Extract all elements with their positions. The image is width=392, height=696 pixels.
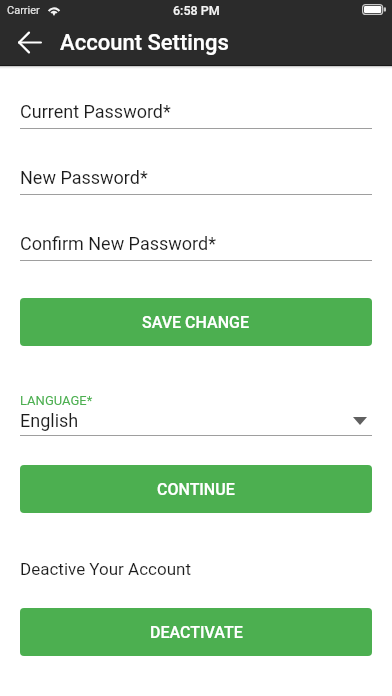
staticText: New Password*: [20, 167, 148, 188]
staticText: DEACTIVATE: [150, 623, 243, 642]
button[interactable]: English: [20, 410, 372, 431]
button[interactable]: CONTINUE: [20, 465, 372, 513]
staticText: Carrier: [7, 4, 40, 17]
button[interactable]: Back: [8, 20, 52, 64]
staticText: Current Password*: [20, 101, 171, 122]
staticText: SAVE CHANGE: [142, 313, 250, 332]
button[interactable]: DEACTIVATE: [20, 608, 372, 656]
staticText: CONTINUE: [157, 480, 235, 499]
staticText: 6:58 PM: [173, 3, 220, 18]
staticText: LANGUAGE*: [20, 393, 93, 408]
staticText: Deactive Your Account: [20, 559, 191, 579]
staticText: English: [20, 410, 79, 431]
staticText: Account Settings: [60, 30, 229, 56]
button[interactable]: SAVE CHANGE: [20, 298, 372, 346]
staticText: Confirm New Password*: [20, 233, 216, 254]
